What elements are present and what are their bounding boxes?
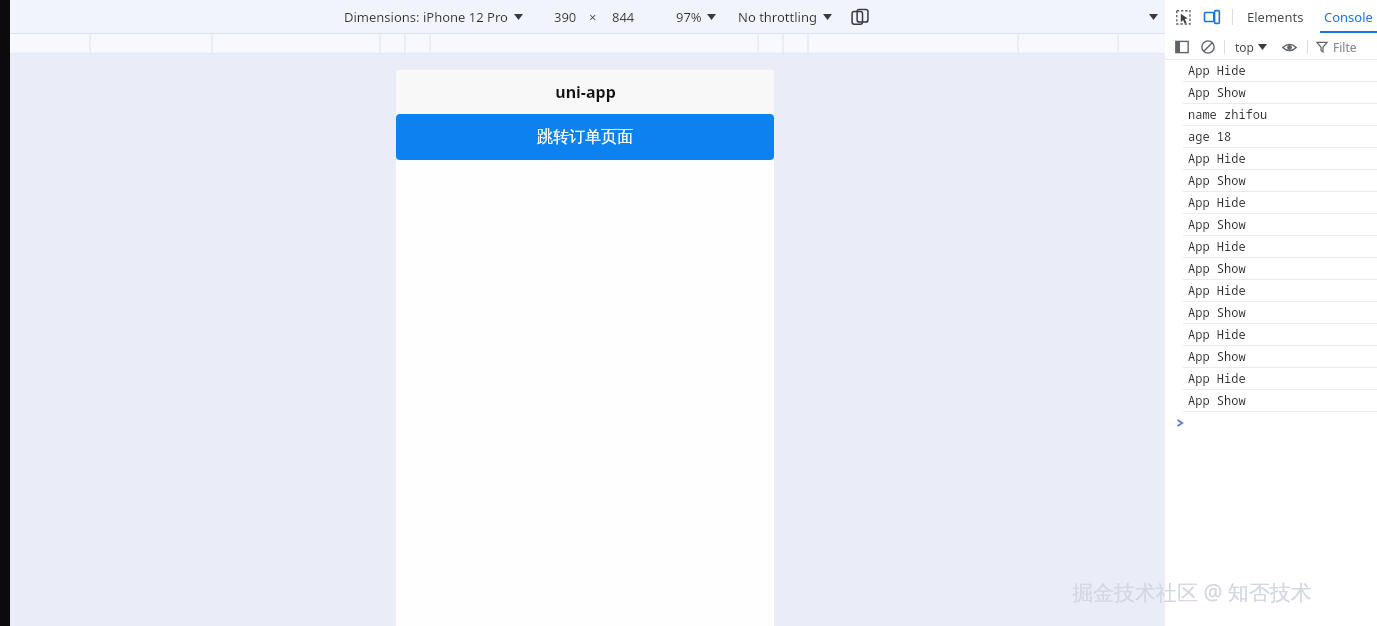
button[interactable]: App Hide — [1165, 60, 1377, 82]
staticText: App Hide — [1188, 150, 1246, 166]
button[interactable]: App Hide — [1165, 280, 1377, 302]
button[interactable]: Clear console — [1198, 37, 1218, 57]
staticText: App Hide — [1188, 62, 1246, 78]
button[interactable]: 390 — [545, 7, 585, 27]
button[interactable]: App Show — [1165, 390, 1377, 412]
staticText: App Show — [1188, 392, 1246, 408]
staticText: top — [1235, 39, 1254, 55]
button[interactable]: 跳转订单页面 — [396, 114, 774, 160]
button[interactable]: Rotate — [849, 6, 871, 28]
staticText: Elements — [1247, 8, 1304, 26]
staticText: 844 — [612, 8, 635, 26]
staticText: No throttling — [738, 8, 817, 26]
staticText: age 18 — [1188, 128, 1232, 144]
button[interactable]: name zhifou — [1165, 104, 1377, 126]
button[interactable]: Show console sidebar — [1172, 37, 1192, 57]
staticText: App Hide — [1188, 326, 1246, 342]
staticText: App Hide — [1188, 282, 1246, 298]
button[interactable]: App Show — [1165, 346, 1377, 368]
staticText: × — [589, 8, 597, 26]
staticText: App Show — [1188, 260, 1246, 276]
button[interactable]: Toggle device toolbar — [1200, 5, 1224, 29]
staticText: Filte — [1333, 39, 1357, 55]
button[interactable]: Show live expressions — [1279, 37, 1299, 57]
button[interactable]: App Show — [1165, 214, 1377, 236]
staticText: 390 — [554, 8, 577, 26]
button[interactable]: App Show — [1165, 170, 1377, 192]
staticText: 跳转订单页面 — [537, 127, 633, 147]
staticText: App Show — [1188, 304, 1246, 320]
staticText: 掘金技术社区 @ 知否技术 — [1072, 578, 1312, 607]
staticText: uni-app — [555, 81, 616, 103]
button[interactable]: No throttling — [735, 4, 835, 30]
button[interactable]: Inspect element — [1171, 5, 1195, 29]
staticText: App Hide — [1188, 238, 1246, 254]
staticText: App Show — [1188, 84, 1246, 100]
button[interactable]: App Hide — [1165, 148, 1377, 170]
button[interactable]: App Hide — [1165, 192, 1377, 214]
button[interactable]: 844 — [603, 7, 643, 27]
button[interactable]: App Hide — [1165, 324, 1377, 346]
button[interactable]: top — [1233, 36, 1269, 58]
staticText: App Show — [1188, 216, 1246, 232]
button[interactable]: More options — [1143, 7, 1163, 27]
button[interactable]: Elements — [1243, 2, 1308, 32]
button[interactable]: age 18 — [1165, 126, 1377, 148]
button[interactable]: App Hide — [1165, 368, 1377, 390]
staticText: App Hide — [1188, 370, 1246, 386]
staticText: App Show — [1188, 172, 1246, 188]
button[interactable]: App Show — [1165, 302, 1377, 324]
staticText: App Hide — [1188, 194, 1246, 210]
button[interactable]: App Hide — [1165, 236, 1377, 258]
staticText: name zhifou — [1188, 106, 1268, 122]
button[interactable]: App Show — [1165, 82, 1377, 104]
button[interactable]: App Show — [1165, 258, 1377, 280]
staticText: 97% — [676, 8, 702, 26]
staticText: Dimensions: iPhone 12 Pro — [344, 8, 508, 26]
staticText: Console — [1324, 8, 1373, 26]
staticText: App Show — [1188, 348, 1246, 364]
button[interactable]: Dimensions: iPhone 12 Pro — [340, 4, 527, 30]
button[interactable]: Filte — [1316, 36, 1357, 58]
button[interactable]: 97% — [673, 4, 719, 30]
button[interactable]: Console — [1320, 0, 1377, 33]
